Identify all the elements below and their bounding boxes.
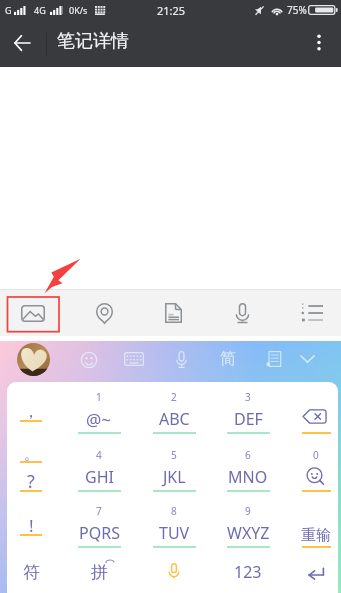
button[interactable] (211, 497, 288, 554)
button[interactable] (211, 382, 288, 440)
button[interactable]: Document (148, 290, 198, 336)
button[interactable]: Back (0, 21, 45, 64)
staticText: DEF (234, 408, 263, 430)
staticText: 拼 (91, 562, 108, 583)
button[interactable]: Profile (17, 343, 50, 376)
button[interactable]: Voice input (217, 290, 267, 336)
button[interactable] (288, 497, 338, 554)
staticText: GHI (85, 466, 114, 488)
staticText: ， (23, 402, 39, 422)
staticText: @~ (86, 408, 112, 431)
button[interactable]: Insert image (8, 290, 58, 336)
staticText: ! (29, 514, 34, 537)
staticText: 2 (171, 390, 177, 404)
staticText: 。 (24, 446, 38, 464)
staticText: 5 (171, 448, 177, 462)
staticText: 123 (234, 561, 262, 583)
button[interactable] (131, 554, 211, 593)
staticText: ? (27, 469, 35, 494)
button[interactable] (7, 554, 55, 593)
button[interactable] (7, 440, 55, 497)
button[interactable] (131, 440, 211, 497)
button[interactable] (288, 382, 338, 440)
button[interactable] (55, 554, 131, 593)
staticText: 75% (287, 3, 307, 17)
staticText: 4G (34, 4, 46, 16)
staticText: 7 (96, 504, 102, 518)
button[interactable]: Location (79, 290, 129, 336)
button[interactable] (7, 497, 55, 554)
button[interactable] (55, 382, 131, 440)
button[interactable]: Keyboard layout (120, 345, 148, 373)
button[interactable] (7, 382, 55, 440)
staticText: G (5, 4, 12, 16)
button[interactable]: Notes (259, 345, 287, 373)
staticText: 3 (245, 390, 251, 404)
button[interactable]: Hide keyboard (293, 345, 321, 373)
button[interactable] (55, 497, 131, 554)
button[interactable] (288, 440, 338, 497)
staticText: 笔记详情 (57, 30, 129, 53)
staticText: 0K/s (69, 4, 88, 16)
staticText: 9 (245, 504, 251, 518)
staticText: 重输 (301, 526, 331, 545)
button[interactable]: 笔记详情 (57, 18, 129, 67)
button[interactable] (211, 440, 288, 497)
button[interactable]: More options (296, 21, 341, 64)
button[interactable]: Checklist (287, 290, 337, 336)
button[interactable] (131, 497, 211, 554)
staticText: 21:25 (157, 3, 186, 18)
staticText: 4 (96, 448, 102, 462)
staticText: 8 (171, 504, 177, 518)
staticText: 简 (220, 349, 236, 369)
button[interactable] (288, 554, 338, 593)
button[interactable] (55, 440, 131, 497)
staticText: 6 (245, 448, 251, 462)
staticText: JKL (163, 466, 186, 488)
button[interactable]: Switch language (214, 345, 242, 373)
staticText: ABC (159, 408, 190, 430)
button[interactable] (131, 382, 211, 440)
button[interactable]: Emoji (75, 346, 103, 374)
staticText: WXYZ (227, 522, 270, 544)
button[interactable]: Voice input (167, 345, 195, 373)
staticText: TUV (159, 522, 190, 544)
button[interactable] (211, 554, 288, 593)
staticText: MNO (228, 466, 268, 488)
staticText: 1 (96, 390, 102, 404)
staticText: 0 (313, 448, 319, 462)
staticText: PQRS (79, 522, 120, 544)
staticText: 符 (23, 562, 40, 583)
